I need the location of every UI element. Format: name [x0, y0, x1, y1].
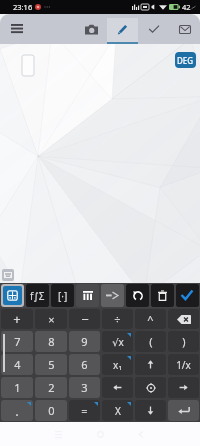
button[interactable]: 6 [69, 354, 100, 375]
button[interactable]: Undo [126, 284, 149, 307]
button[interactable]: bksp [168, 309, 199, 329]
button[interactable]: Delete [151, 284, 174, 307]
button[interactable]: Brackets [51, 284, 74, 307]
button[interactable]: 8 [35, 331, 67, 352]
staticText: 3 [81, 380, 88, 395]
staticText: ( [149, 334, 153, 349]
staticText: + [13, 310, 21, 328]
staticText: 2 [48, 380, 55, 395]
button[interactable]: Keyboard [2, 269, 14, 281]
staticText: 1 [14, 380, 21, 395]
button[interactable]: 3 [69, 377, 100, 398]
staticText: 5 [48, 357, 55, 372]
button[interactable]: up [135, 354, 166, 375]
staticText: 8 [48, 334, 55, 349]
button[interactable]: − [69, 309, 100, 329]
button[interactable]: 1 [1, 377, 33, 398]
button[interactable]: Table [76, 284, 99, 307]
staticText: x₁ [113, 358, 122, 372]
button[interactable]: More [101, 284, 124, 307]
staticText: DEG [177, 55, 194, 66]
button[interactable]: down [135, 400, 166, 421]
button[interactable]: left [102, 377, 133, 398]
staticText: X [115, 404, 121, 418]
button[interactable]: target [135, 377, 166, 398]
button[interactable]: . [1, 400, 33, 421]
button[interactable]: 4 [1, 354, 33, 375]
staticText: = [81, 403, 88, 418]
staticText: 7 [14, 334, 21, 349]
button[interactable]: right [168, 377, 199, 398]
staticText: 6 [81, 357, 88, 372]
staticText: √x [112, 335, 124, 349]
button[interactable]: = [69, 400, 100, 421]
button[interactable]: ( [135, 331, 166, 352]
button[interactable]: 5 [35, 354, 67, 375]
button[interactable]: ^ [135, 309, 166, 329]
button[interactable]: Menu [0, 14, 33, 44]
button[interactable]: + [1, 309, 33, 329]
button[interactable]: ÷ [102, 309, 133, 329]
button[interactable]: 0 [35, 400, 67, 421]
button[interactable]: ) [168, 331, 199, 352]
staticText: 4 [14, 357, 21, 372]
staticText: ^ [147, 312, 154, 327]
staticText: . [15, 402, 19, 420]
button[interactable]: 1/x [168, 354, 199, 375]
button[interactable]: X [102, 400, 133, 421]
staticText: [·] [58, 289, 68, 303]
button[interactable]: Functions [26, 284, 49, 307]
button[interactable]: enter [168, 400, 199, 421]
staticText: 9 [81, 334, 88, 349]
button[interactable]: 7 [1, 331, 33, 352]
staticText: ) [182, 334, 186, 349]
staticText: ÷ [114, 312, 121, 327]
button[interactable]: Mail [169, 14, 200, 44]
button[interactable]: DEG [175, 52, 196, 68]
staticText: 1/x [176, 358, 191, 372]
button[interactable]: Camera [76, 14, 107, 44]
button[interactable]: 2 [35, 377, 67, 398]
button[interactable]: Confirm [138, 14, 169, 44]
button[interactable]: x₁ [102, 354, 133, 375]
button[interactable]: × [35, 309, 67, 329]
staticText: f∫Σ [30, 289, 45, 303]
staticText: 0 [48, 403, 55, 418]
button[interactable]: Matrix [3, 286, 22, 305]
button[interactable]: √x [102, 331, 133, 352]
staticText: 23:16 [13, 2, 33, 12]
button[interactable]: Draw [107, 14, 138, 44]
staticText: × [48, 312, 55, 327]
button[interactable]: Done [176, 284, 199, 307]
button[interactable]: 9 [69, 331, 100, 352]
staticText: − [81, 310, 89, 328]
staticText: 42 [182, 2, 191, 12]
